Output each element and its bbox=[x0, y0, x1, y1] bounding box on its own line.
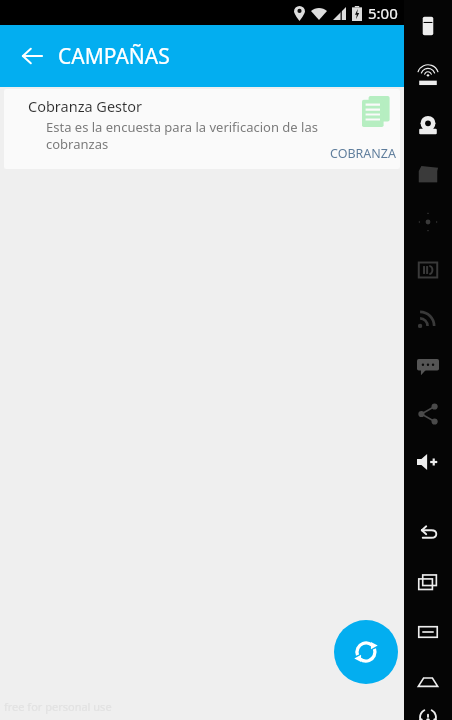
button[interactable]: Sincronizar bbox=[334, 620, 398, 684]
staticText: COBRANZA bbox=[330, 145, 396, 162]
button[interactable]: Emulator control bbox=[410, 564, 446, 600]
button[interactable]: Emulator control bbox=[410, 514, 446, 550]
button[interactable]: Emulator control bbox=[410, 60, 446, 96]
button[interactable]: Emulator control bbox=[410, 252, 446, 288]
staticText: Cobranza Gestor bbox=[28, 96, 143, 116]
staticText: CAMPAÑAS bbox=[58, 42, 170, 71]
button[interactable]: Emulator control bbox=[410, 714, 446, 720]
staticText: free for personal use bbox=[4, 699, 112, 714]
button[interactable]: Emulator control bbox=[410, 8, 446, 44]
button[interactable]: Cobranza Gestor bbox=[4, 89, 400, 169]
button[interactable]: Emulator control bbox=[410, 156, 446, 192]
button[interactable]: Emulator control bbox=[410, 348, 446, 384]
button[interactable]: Emulator control bbox=[410, 664, 446, 700]
button[interactable]: Emulator control bbox=[410, 444, 446, 480]
button[interactable]: Emulator control bbox=[410, 300, 446, 336]
button[interactable]: Atrás bbox=[10, 34, 54, 78]
button[interactable]: Emulator control bbox=[410, 204, 446, 240]
staticText: Esta es la encuesta para la verificacion… bbox=[46, 118, 336, 153]
button[interactable]: Emulator control bbox=[410, 396, 446, 432]
button[interactable]: Emulator control bbox=[410, 614, 446, 650]
button[interactable]: Emulator control bbox=[410, 108, 446, 144]
staticText: 5:00 bbox=[368, 3, 398, 23]
